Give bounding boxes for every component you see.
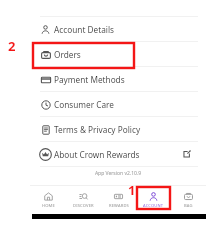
staticText: BAG: [184, 203, 193, 209]
button[interactable]: Orders: [30, 42, 206, 66]
button[interactable]: ACCOUNT: [136, 192, 171, 209]
staticText: About Crown Rewards: [54, 149, 140, 160]
button[interactable]: Account Details: [30, 17, 206, 41]
button[interactable]: Consumer Care: [30, 92, 206, 116]
button[interactable]: About Crown Rewards: [30, 142, 206, 166]
staticText: Terms & Privacy Policy: [54, 124, 141, 135]
staticText: App Version v2.10.9: [30, 170, 206, 177]
staticText: Payment Methods: [54, 74, 125, 85]
staticText: 1: [128, 181, 136, 199]
staticText: 2: [8, 37, 16, 55]
button[interactable]: BAG: [171, 192, 206, 209]
other: Open external link: [183, 150, 191, 158]
staticText: HOME: [42, 203, 55, 209]
staticText: Consumer Care: [54, 99, 115, 110]
staticText: ACCOUNT: [143, 203, 164, 209]
staticText: Account Details: [54, 24, 114, 35]
button[interactable]: DISCOVER: [66, 192, 101, 209]
staticText: DISCOVER: [73, 203, 94, 209]
button[interactable]: Terms & Privacy Policy: [30, 117, 206, 141]
staticText: Orders: [54, 49, 81, 60]
button[interactable]: REWARDS: [101, 192, 136, 209]
button[interactable]: HOME: [30, 192, 66, 209]
button[interactable]: Payment Methods: [30, 67, 206, 91]
staticText: REWARDS: [109, 203, 129, 209]
